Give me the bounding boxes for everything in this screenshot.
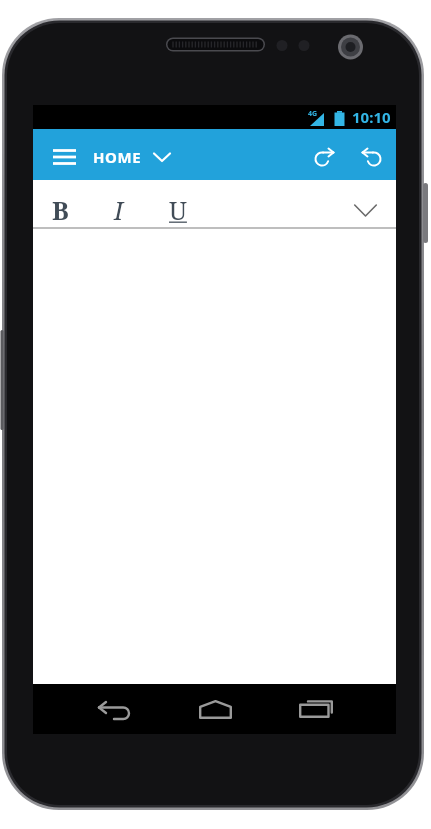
button[interactable] — [43, 139, 87, 175]
button[interactable] — [89, 684, 139, 734]
staticText: B — [52, 193, 69, 227]
staticText: I — [114, 193, 124, 227]
button[interactable] — [349, 138, 391, 176]
button[interactable]: B — [46, 189, 75, 231]
button[interactable] — [343, 189, 387, 231]
staticText: 10:10 — [352, 107, 391, 127]
button[interactable]: U — [164, 189, 192, 231]
staticText: U — [169, 193, 187, 227]
staticText: 4G — [308, 109, 318, 119]
button[interactable]: HOME — [93, 139, 171, 175]
button[interactable] — [291, 684, 341, 734]
staticText: HOME — [93, 147, 142, 167]
button[interactable] — [305, 138, 347, 176]
button[interactable] — [190, 684, 240, 734]
button[interactable]: I — [105, 189, 133, 231]
